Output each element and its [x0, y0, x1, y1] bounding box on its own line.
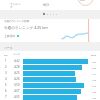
button[interactable]: 3: [0, 70, 100, 76]
staticText: 3:50: [14, 83, 20, 87]
staticText: 統計: [43, 3, 50, 7]
staticText: ペース: [13, 53, 21, 56]
staticText: 175: [92, 90, 97, 93]
button[interactable]: 統計: [42, 0, 50, 9]
staticText: 6: [5, 89, 7, 93]
staticText: 3: [5, 71, 7, 75]
staticText: 1: [5, 59, 7, 63]
staticText: 4:25: [14, 71, 20, 75]
button[interactable]: 2: [0, 64, 100, 70]
button[interactable]: 4: [0, 76, 100, 82]
staticText: 4:05: [14, 95, 20, 99]
staticText: 今週のランニング距離: [4, 20, 30, 23]
staticText: 4:26: [14, 77, 20, 81]
staticText: 163: [92, 60, 97, 63]
button[interactable]: 7: [0, 94, 100, 100]
staticText: 174: [92, 84, 97, 87]
staticText: km: [4, 53, 8, 56]
staticText: ランニング: [10, 2, 23, 8]
button[interactable]: 6: [0, 88, 100, 94]
button[interactable]: ランニング: [10, 0, 23, 9]
staticText: ペース: [4, 46, 13, 50]
staticText: 4:07: [14, 89, 20, 93]
staticText: 171: [92, 72, 97, 75]
staticText: 7: [5, 95, 7, 99]
staticText: 4: [5, 77, 7, 81]
staticText: 4:28: [14, 65, 20, 69]
button[interactable]: 今週のランニング距離: [0, 19, 100, 42]
staticText: 4:42: [14, 59, 20, 63]
staticText: 2: [5, 65, 7, 69]
staticText: 上昇傾向: [4, 34, 16, 38]
staticText: 5: [5, 83, 7, 87]
staticText: 170: [92, 78, 97, 81]
button[interactable]: 5: [0, 82, 100, 88]
staticText: bpm: [91, 53, 97, 56]
button[interactable]: 1: [0, 58, 100, 64]
staticText: 今週のランニング 4.25 km: [4, 25, 48, 30]
staticText: 168: [92, 66, 97, 69]
staticText: 176: [92, 96, 97, 99]
